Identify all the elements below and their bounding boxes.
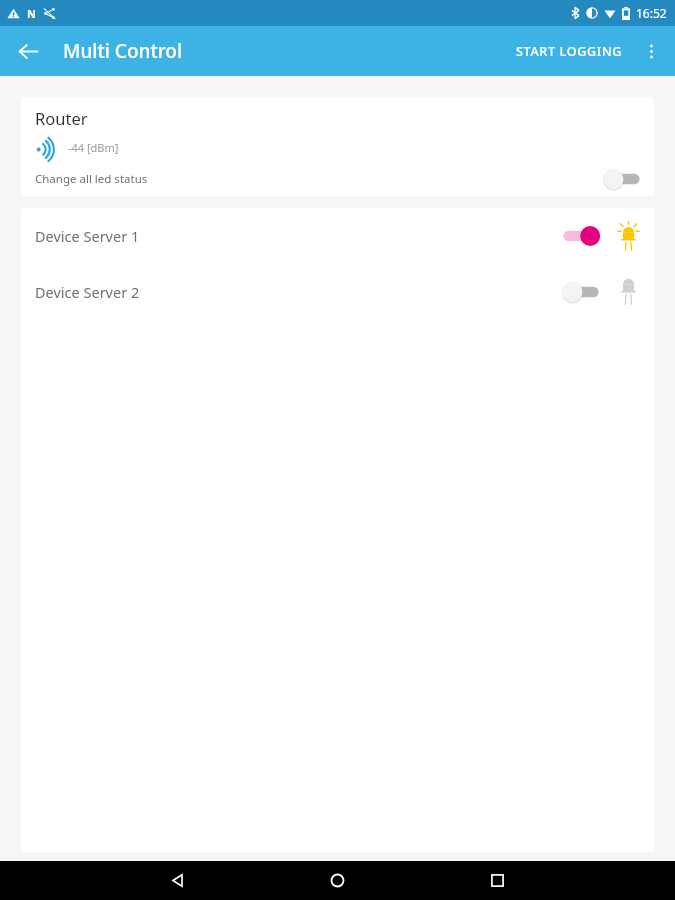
button[interactable]: LED lit xyxy=(611,219,645,253)
staticText: 16:52 xyxy=(636,5,667,21)
button[interactable]: Navigate up xyxy=(9,32,47,70)
button[interactable]: Router xyxy=(21,97,654,196)
staticText: N xyxy=(27,6,36,21)
staticText: START LOGGING xyxy=(516,43,623,60)
button[interactable]: Device Server 2 LED xyxy=(561,279,601,305)
staticText: -44 [dBm] xyxy=(68,140,119,155)
button[interactable]: Home xyxy=(315,861,359,900)
staticText: Change all led status xyxy=(35,171,148,187)
staticText: Router xyxy=(35,107,88,129)
staticText: Multi Control xyxy=(63,38,183,64)
button[interactable]: Change all led status xyxy=(602,166,642,192)
button[interactable]: LED off xyxy=(611,275,645,309)
button[interactable]: Recent apps xyxy=(475,861,519,900)
staticText: Device Server 2 xyxy=(35,282,140,302)
button[interactable]: Change all led status xyxy=(21,165,654,193)
button[interactable]: More options xyxy=(632,32,670,70)
staticText: Device Server 1 xyxy=(35,226,140,246)
button[interactable]: START LOGGING xyxy=(507,34,632,69)
button[interactable]: Device Server 1 LED xyxy=(561,223,601,249)
button[interactable]: Back xyxy=(155,861,199,900)
button[interactable]: Device Server 1 xyxy=(21,208,654,264)
button[interactable]: Device Server 2 xyxy=(21,264,654,320)
